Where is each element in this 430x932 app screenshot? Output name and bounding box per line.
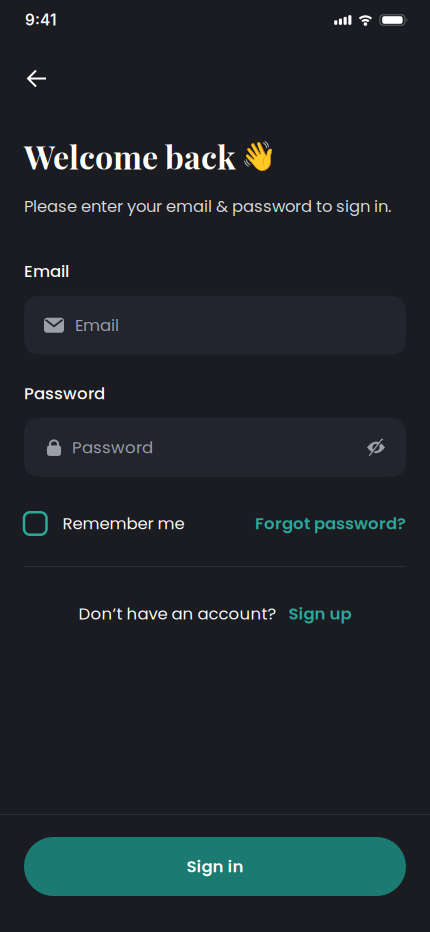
- staticText: Password: [72, 436, 153, 459]
- button[interactable]: Show password: [367, 438, 385, 456]
- staticText: 👋: [241, 139, 277, 173]
- button[interactable]: Remember me: [24, 512, 184, 535]
- staticText: Sign up: [288, 602, 351, 625]
- button[interactable]: Forgot password?: [255, 512, 406, 535]
- staticText: Remember me: [62, 512, 184, 535]
- button[interactable]: Back: [27, 70, 47, 87]
- staticText: Don’t have an account?: [78, 602, 276, 625]
- staticText: Email: [24, 260, 69, 283]
- staticText: Welcome back: [24, 135, 236, 178]
- staticText: Email: [75, 314, 119, 337]
- staticText: Password: [24, 382, 105, 405]
- staticText: Please enter your email & password to si…: [24, 195, 391, 218]
- button[interactable]: Sign up: [288, 602, 351, 625]
- button[interactable]: Sign in: [24, 837, 406, 896]
- staticText: Forgot password?: [255, 512, 406, 535]
- staticText: 9:41: [25, 11, 56, 29]
- staticText: Sign in: [186, 855, 243, 878]
